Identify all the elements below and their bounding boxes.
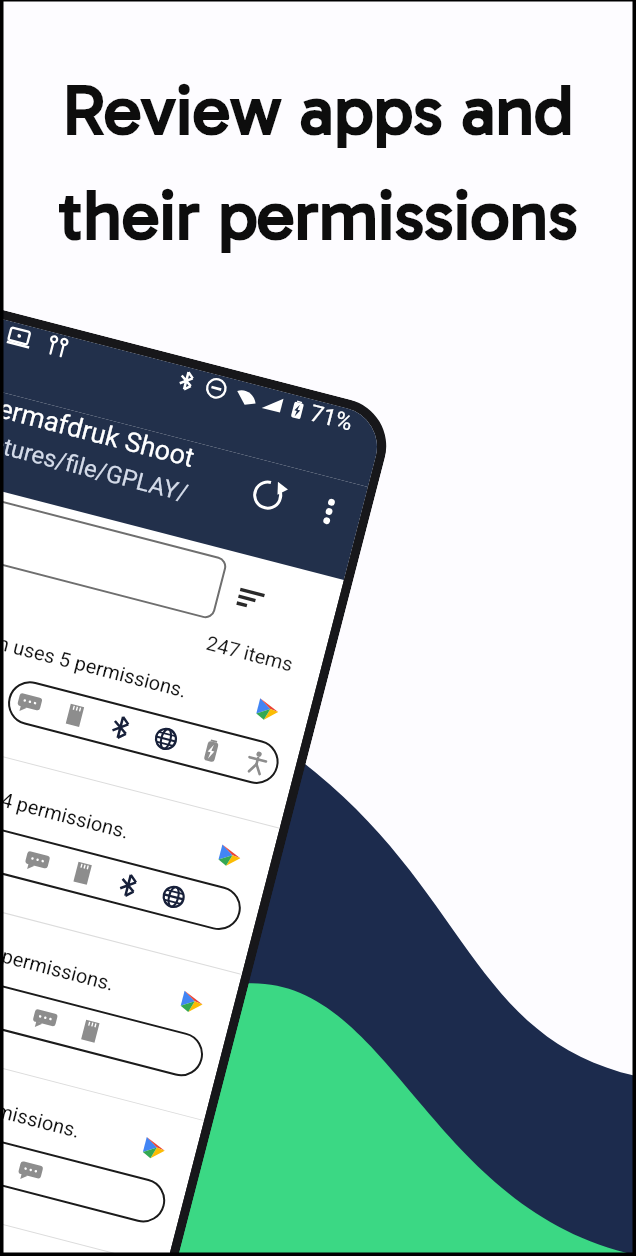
staticText: Schermafdruk Shoot — [0, 381, 198, 474]
button[interactable]: More options — [307, 489, 351, 533]
button[interactable] — [3, 676, 283, 789]
staticText: Weer Vandaag uses 1 permissions. — [0, 1041, 82, 1142]
staticText: Foto Galerij uses 4 permissions. — [0, 749, 132, 843]
staticText: Review apps and — [62, 68, 574, 152]
button[interactable]: Refresh — [240, 467, 296, 523]
button[interactable] — [0, 823, 246, 935]
staticText: …/Pictures/file/GPLAY/RELE… — [0, 418, 244, 521]
staticText: Nieuws Lezer uses 3 permissions. — [0, 1188, 36, 1256]
button[interactable] — [0, 1115, 170, 1227]
staticText: Mobile Skerm uses 5 permissions. — [0, 603, 190, 702]
button[interactable]: Search — [0, 481, 228, 620]
button[interactable]: Sort — [228, 576, 272, 620]
staticText: 247 items — [204, 631, 296, 676]
staticText: their permissions — [58, 173, 578, 257]
staticText: Muziek Speler uses 2 permissions. — [0, 895, 116, 995]
button[interactable] — [0, 969, 208, 1081]
staticText: 71% — [307, 400, 356, 437]
